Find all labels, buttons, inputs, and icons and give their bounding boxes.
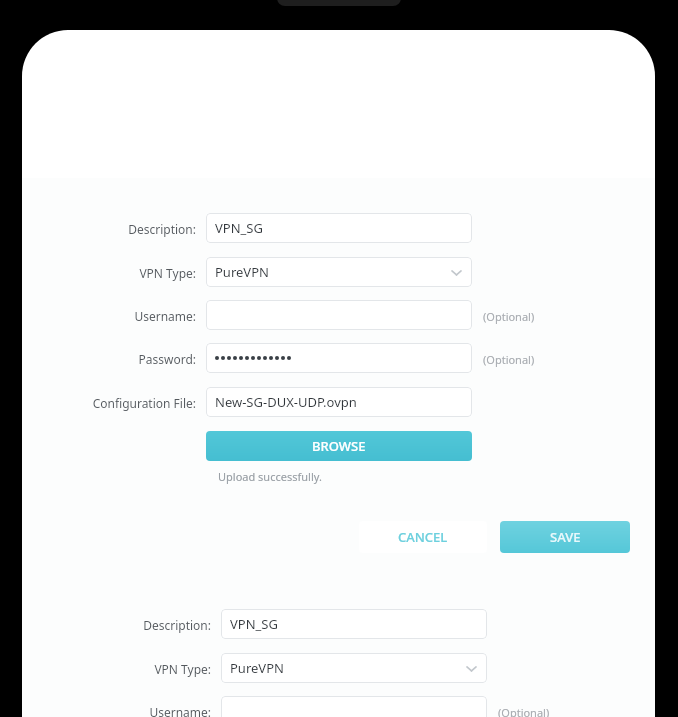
staticText: New-SG-DUX-UDP.ovpn [215, 393, 357, 411]
button[interactable] [206, 343, 472, 373]
button[interactable]: PureVPN [221, 653, 487, 683]
staticText: PureVPN [230, 659, 284, 677]
staticText: VPN_SG [230, 615, 278, 633]
staticText: SAVE [550, 528, 581, 546]
staticText: Description: [41, 617, 211, 633]
staticText: (Optional) [498, 705, 550, 717]
button[interactable]: CANCEL [359, 521, 487, 553]
staticText: Description: [26, 221, 196, 237]
staticText: BROWSE [312, 437, 366, 455]
staticText: Password: [26, 351, 196, 367]
button[interactable] [221, 696, 487, 717]
staticText: VPN Type: [41, 661, 211, 677]
button[interactable]: PureVPN [206, 257, 472, 287]
staticText: Upload successfully. [218, 469, 322, 484]
staticText: (Optional) [483, 309, 535, 324]
button[interactable]: New-SG-DUX-UDP.ovpn [206, 387, 472, 417]
button[interactable] [206, 300, 472, 330]
staticText: VPN Type: [26, 265, 196, 281]
button[interactable]: VPN_SG [221, 609, 487, 639]
staticText: Username: [41, 704, 211, 717]
staticText: VPN_SG [215, 219, 263, 237]
staticText: Configuration File: [26, 395, 196, 411]
staticText: Username: [26, 308, 196, 324]
staticText: CANCEL [398, 528, 448, 546]
button[interactable]: VPN_SG [206, 213, 472, 243]
staticText: PureVPN [215, 263, 269, 281]
button[interactable]: SAVE [500, 521, 630, 553]
button[interactable]: BROWSE [206, 431, 472, 461]
staticText: (Optional) [483, 352, 535, 367]
